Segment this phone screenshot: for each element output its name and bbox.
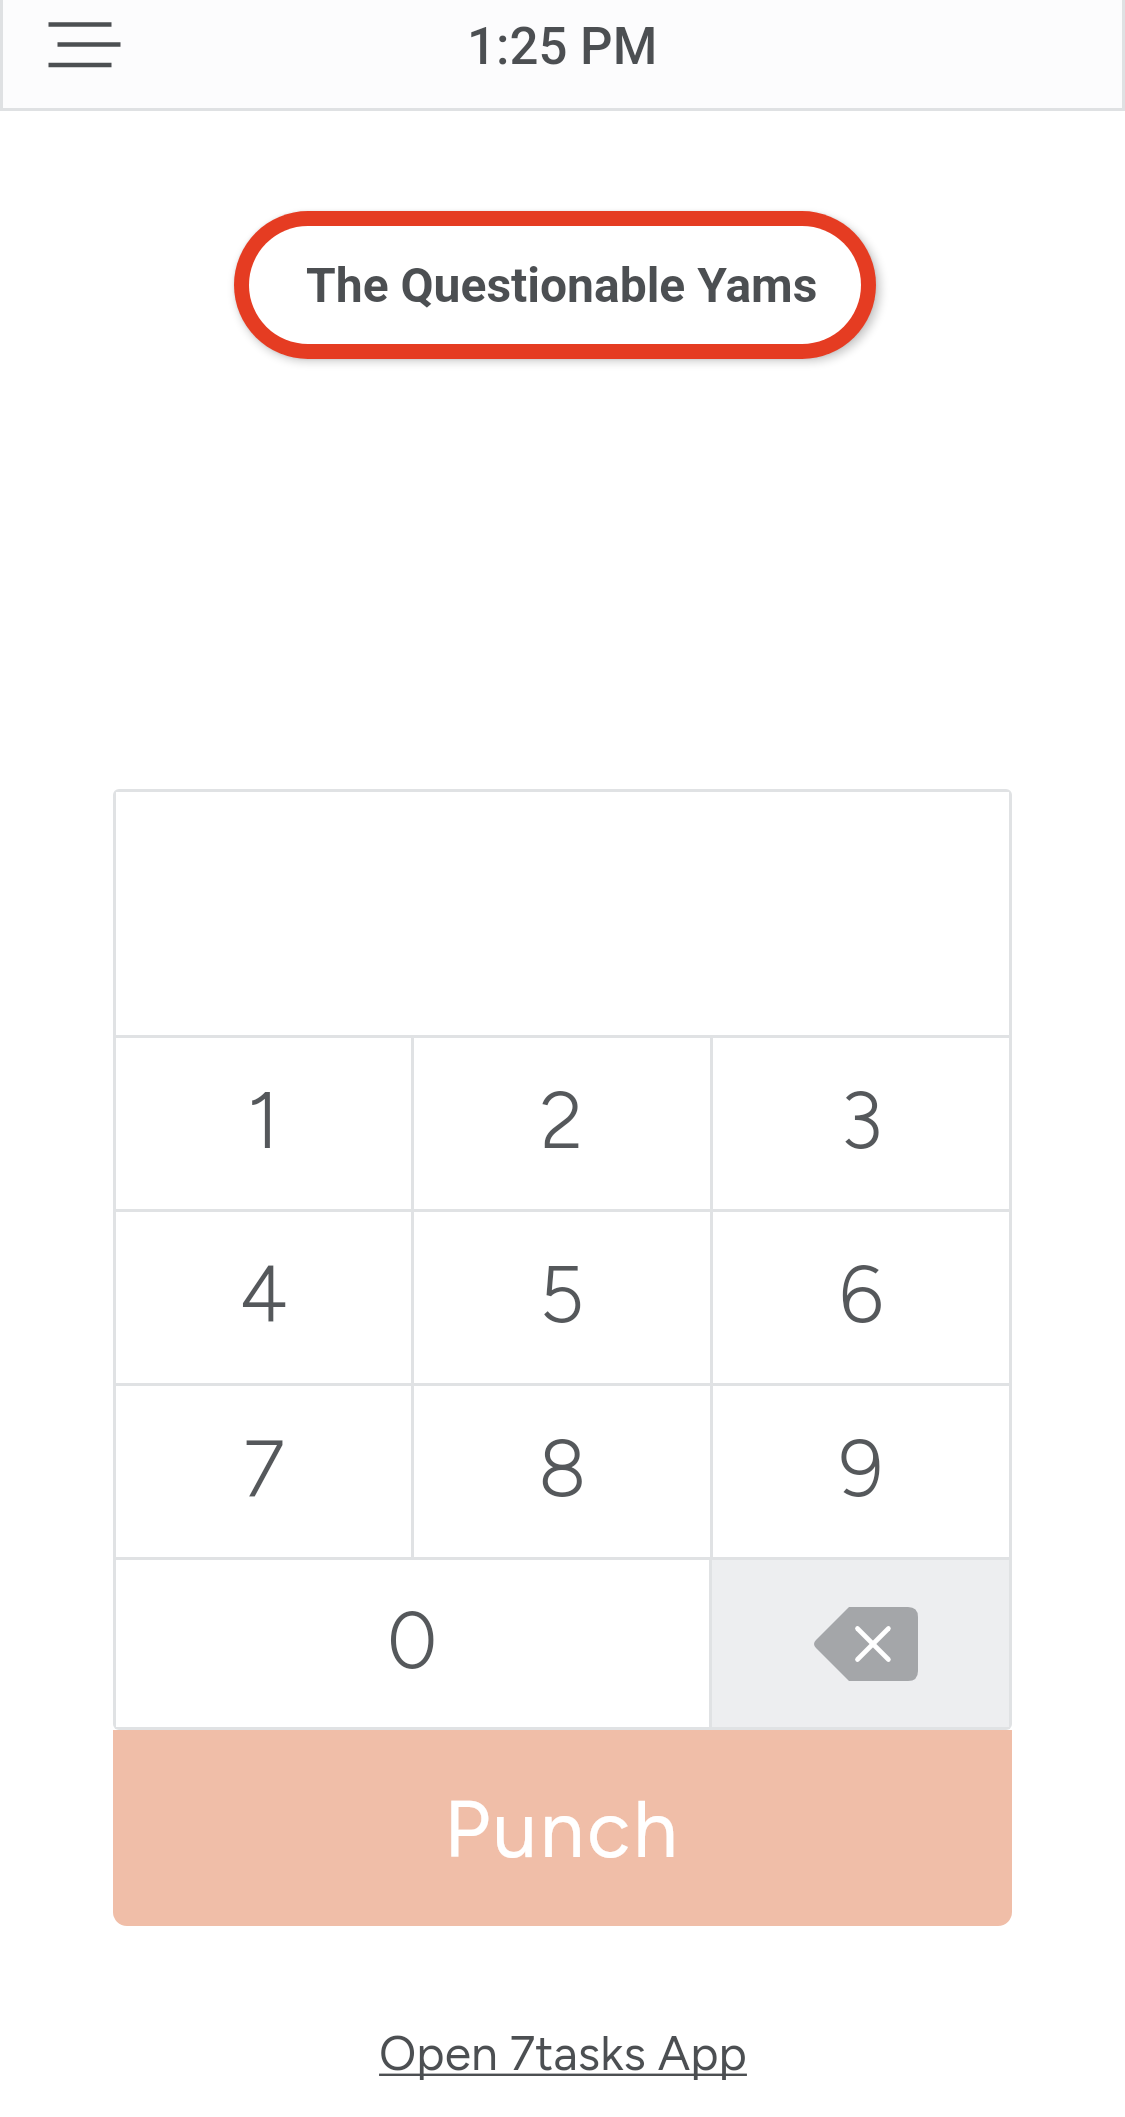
staticText: 7 (243, 1421, 285, 1516)
button[interactable]: 9 (713, 1386, 1009, 1557)
button[interactable]: 2 (414, 1038, 710, 1209)
staticText: 1:25 PM (467, 17, 658, 77)
staticText: Open 7tasks App (379, 2024, 747, 2082)
staticText: 3 (840, 1073, 883, 1168)
staticText: 0 (387, 1593, 438, 1688)
button[interactable]: 1 (116, 1038, 411, 1209)
button[interactable]: Open 7tasks App (379, 2024, 747, 2082)
staticText: 4 (239, 1247, 288, 1342)
button[interactable]: 6 (713, 1212, 1009, 1383)
button[interactable]: Backspace (712, 1560, 1009, 1727)
staticText: 8 (538, 1421, 587, 1516)
staticText: The Questionable Yams (306, 257, 818, 313)
staticText: 2 (540, 1073, 584, 1168)
button[interactable]: 8 (414, 1386, 710, 1557)
button[interactable]: The Questionable Yams (249, 226, 861, 344)
button[interactable]: 5 (414, 1212, 710, 1383)
staticText: 6 (839, 1247, 884, 1342)
button[interactable]: Menu (31, 2, 143, 86)
button[interactable]: 0 (116, 1560, 709, 1727)
staticText: 1 (247, 1073, 280, 1168)
button[interactable]: 4 (116, 1212, 411, 1383)
staticText: 5 (539, 1247, 585, 1342)
staticText: 9 (839, 1421, 884, 1516)
button[interactable]: 7 (116, 1386, 411, 1557)
staticText: Punch (444, 1781, 681, 1877)
button[interactable]: Punch (113, 1730, 1012, 1926)
button[interactable]: 3 (713, 1038, 1009, 1209)
